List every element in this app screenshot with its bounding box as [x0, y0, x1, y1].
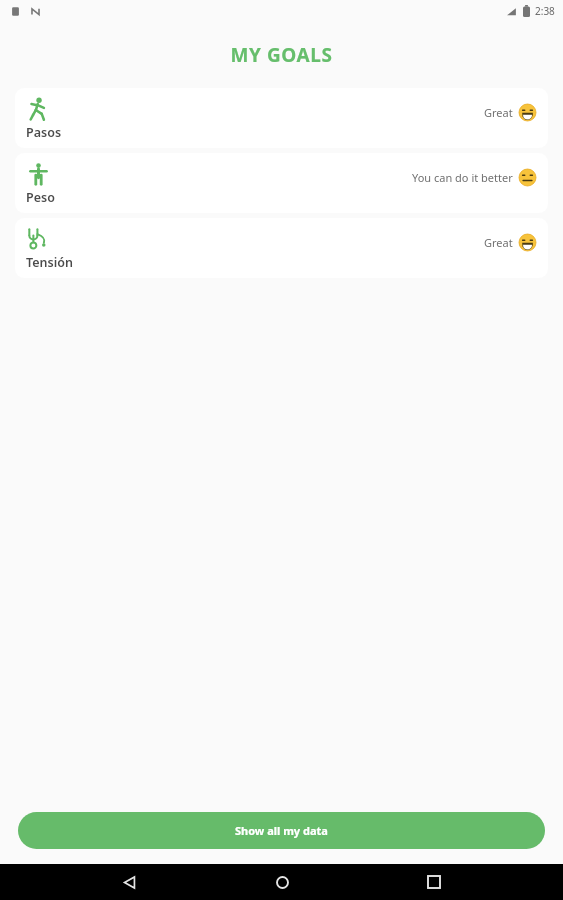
button[interactable]: Peso	[15, 153, 548, 213]
staticText: Pasos	[26, 124, 62, 141]
staticText: MY GOALS	[0, 42, 563, 68]
button[interactable]: Tensión	[15, 218, 548, 278]
staticText: Great	[484, 105, 513, 120]
button[interactable]: Home	[258, 864, 306, 900]
staticText: Peso	[26, 189, 55, 206]
button[interactable]: Recent apps	[410, 864, 458, 900]
staticText: Great	[484, 235, 513, 250]
button[interactable]: Pasos	[15, 88, 548, 148]
staticText: Tensión	[26, 254, 73, 271]
staticText: 2:38	[535, 4, 555, 18]
staticText: Show all my data	[235, 823, 328, 838]
button[interactable]: Show all my data	[18, 812, 545, 849]
button[interactable]: Back	[105, 864, 153, 900]
staticText: You can do it better	[412, 170, 513, 185]
